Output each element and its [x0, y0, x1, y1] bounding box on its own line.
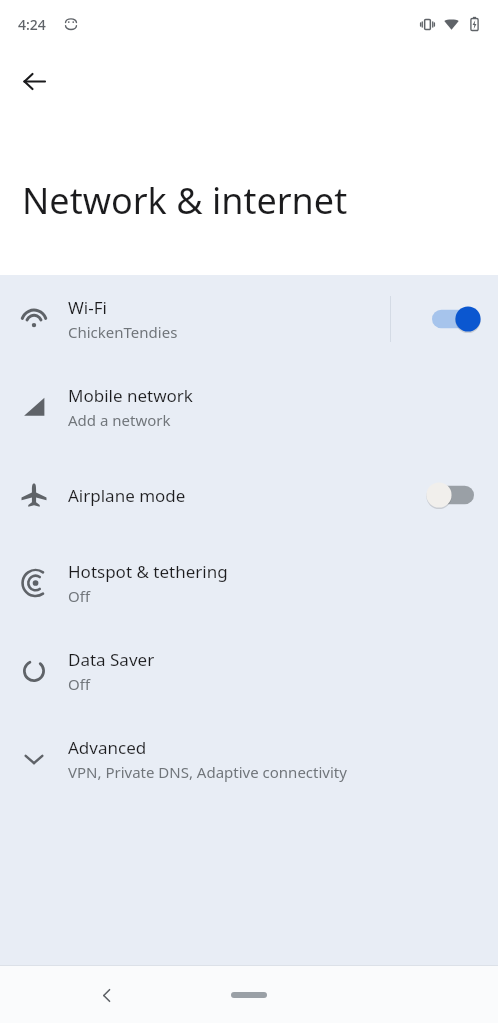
staticText: Hotspot & tethering: [68, 560, 228, 583]
staticText: Data Saver: [68, 648, 155, 671]
staticText: Off: [68, 674, 91, 694]
button[interactable]: Hotspot & tethering: [0, 539, 498, 627]
button[interactable]: Data Saver: [0, 627, 498, 715]
button[interactable]: Wi-Fi: [0, 275, 498, 363]
staticText: Off: [68, 586, 91, 606]
staticText: Add a network: [68, 410, 171, 430]
button[interactable]: Wi-Fi toggle: [420, 297, 486, 341]
staticText: Mobile network: [68, 384, 193, 407]
staticText: Wi-Fi: [68, 296, 107, 319]
button[interactable]: Mobile network: [0, 363, 498, 451]
staticText: Airplane mode: [68, 484, 186, 507]
staticText: Network & internet: [22, 176, 348, 225]
staticText: 4:24: [18, 15, 46, 34]
staticText: Advanced: [68, 736, 147, 759]
button[interactable]: Airplane mode toggle: [420, 473, 486, 517]
button[interactable]: Airplane mode: [0, 451, 498, 539]
staticText: ChickenTendies: [68, 322, 178, 342]
staticText: VPN, Private DNS, Adaptive connectivity: [68, 762, 347, 782]
button[interactable]: Back: [10, 57, 58, 105]
button[interactable]: Advanced: [0, 715, 498, 803]
button[interactable]: Back: [83, 971, 131, 1019]
button[interactable]: Home: [215, 980, 283, 1010]
